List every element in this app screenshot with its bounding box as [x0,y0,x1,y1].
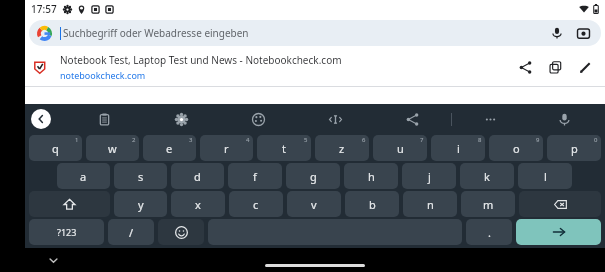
button[interactable]: e [143,135,196,161]
staticText: r [224,141,229,156]
button[interactable]: z [315,135,369,161]
staticText: 17:57 [31,2,57,16]
button[interactable]: Voice input [529,104,599,134]
staticText: e [166,141,173,156]
staticText: 0 [594,136,598,144]
button[interactable]: / [108,219,154,245]
button[interactable]: n [403,191,457,217]
button[interactable]: Text edit [297,104,374,134]
button[interactable]: Backspace [519,191,601,217]
button[interactable]: v [287,191,341,217]
button[interactable]: Go [516,219,601,245]
button[interactable]: l [518,163,572,189]
button[interactable]: c [229,191,283,217]
button[interactable]: Share [513,55,537,79]
staticText: f [253,169,257,184]
staticText: 7 [420,136,424,144]
button[interactable]: y [114,191,167,217]
button[interactable]: Back [31,109,51,129]
button[interactable]: Shift [29,191,110,217]
button[interactable]: h [344,163,398,189]
button[interactable]: Theme [220,104,297,134]
staticText: 8 [478,136,482,144]
staticText: z [339,141,345,156]
button[interactable]: i [431,135,485,161]
staticText: v [311,197,317,212]
button[interactable]: k [460,163,514,189]
button[interactable]: w [86,135,139,161]
staticText: . [488,225,491,240]
button[interactable]: Emoji [158,219,204,245]
button[interactable]: Voice search [547,23,567,43]
button[interactable]: . [466,219,512,245]
staticText: s [138,169,144,184]
staticText: ?123 [57,226,77,238]
staticText: / [129,225,134,240]
button[interactable]: Copy [543,55,567,79]
button[interactable]: p [547,135,601,161]
button[interactable]: t [257,135,311,161]
staticText: c [253,197,259,212]
staticText: g [310,169,317,184]
button[interactable]: o [489,135,543,161]
staticText: i [457,141,460,156]
staticText: h [368,169,375,184]
button[interactable]: a [57,163,110,189]
staticText: p [571,141,578,156]
button[interactable]: More [452,104,529,134]
button[interactable]: Settings [143,104,220,134]
button[interactable]: Share [374,104,451,134]
staticText: Notebook Test, Laptop Test und News - No… [60,53,342,67]
staticText: t [282,141,286,156]
staticText: 3 [189,136,193,144]
staticText: k [484,169,490,184]
staticText: j [428,169,431,184]
staticText: 9 [536,136,540,144]
button[interactable]: b [345,191,399,217]
staticText: u [397,141,404,156]
button[interactable]: Lens search [573,23,593,43]
staticText: 1 [75,136,79,144]
staticText: m [483,197,494,212]
button[interactable]: Edit [573,55,597,79]
button[interactable]: f [228,163,282,189]
button[interactable]: u [373,135,427,161]
button[interactable]: m [461,191,515,217]
button[interactable]: Search field [29,20,601,46]
button[interactable]: ?123 [29,219,104,245]
button[interactable]: d [171,163,224,189]
button[interactable]: g [286,163,340,189]
staticText: 6 [362,136,366,144]
button[interactable]: j [402,163,456,189]
button[interactable]: Hide keyboard [43,250,63,270]
staticText: q [52,141,59,156]
staticText: a [80,169,87,184]
staticText: o [513,141,520,156]
staticText: n [427,197,434,212]
button[interactable]: Notebook Test, Laptop Test und News - No… [25,48,605,86]
staticText: w [108,141,117,156]
button[interactable]: Clipboard [65,104,143,134]
staticText: b [369,197,376,212]
staticText: l [544,169,547,184]
button[interactable]: q [29,135,82,161]
button[interactable]: s [114,163,167,189]
staticText: 2 [132,136,136,144]
staticText: x [195,197,201,212]
button[interactable]: r [200,135,253,161]
staticText: y [138,197,144,212]
staticText: 4 [246,136,250,144]
button[interactable]: x [171,191,225,217]
staticText: notebookcheck.com [60,69,146,81]
staticText: d [194,169,201,184]
staticText: 5 [304,136,308,144]
staticText: Suchbegriff oder Webadresse eingeben [63,26,249,40]
